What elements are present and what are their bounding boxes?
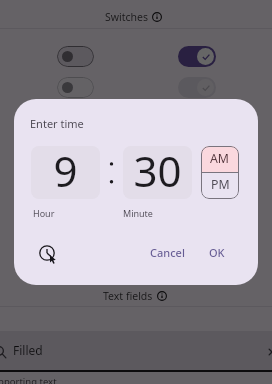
button[interactable] [178,46,216,67]
button[interactable]: AM [201,146,239,172]
button[interactable] [178,77,216,98]
button[interactable]: PM [201,173,239,199]
other: Clear text [266,346,272,358]
other: Info [157,291,167,301]
staticText: Cancel [150,245,185,260]
staticText: PM [211,176,230,193]
other: Search [0,345,7,359]
staticText: 30 [133,146,182,195]
staticText: Hour [33,207,55,219]
button[interactable]: OK [201,240,233,265]
button[interactable]: Search [0,331,272,372]
button[interactable]: Switch to clock input mode [34,240,60,266]
button[interactable] [57,46,94,67]
button[interactable]: Cancel [142,240,193,265]
staticText: Filled [13,342,43,358]
button[interactable]: 30 [123,146,192,199]
staticText: AM [210,150,230,167]
staticText: Text fields [103,289,153,303]
staticText: OK [209,245,225,260]
staticText: Supporting text [0,375,57,384]
button[interactable]: 9 [31,146,100,199]
button[interactable] [57,77,94,98]
staticText: 9 [53,146,78,195]
staticText: Minute [123,207,153,219]
staticText: Enter time [30,116,84,131]
other: Info [152,12,162,22]
staticText: Switches [105,10,148,24]
